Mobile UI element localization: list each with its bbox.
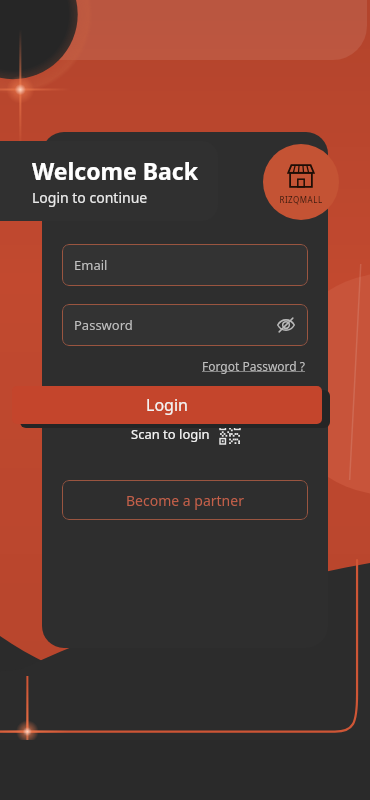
staticText: Become a partner bbox=[126, 491, 244, 510]
staticText: Login to continue bbox=[32, 188, 148, 207]
button[interactable]: Forgot Password ? bbox=[200, 356, 308, 376]
staticText: Login bbox=[146, 394, 188, 416]
button[interactable]: Password bbox=[62, 304, 308, 346]
staticText: RIZQMALL bbox=[279, 194, 323, 205]
button[interactable]: Become a partner bbox=[62, 480, 308, 520]
button[interactable]: Email bbox=[62, 244, 308, 286]
button[interactable]: Scan to login bbox=[125, 420, 246, 448]
staticText: Forgot Password ? bbox=[202, 358, 306, 374]
button[interactable]: Show password bbox=[274, 313, 298, 337]
button[interactable]: Welcome Back bbox=[0, 141, 218, 221]
staticText: Password bbox=[74, 316, 133, 334]
staticText: Email bbox=[74, 256, 108, 274]
button[interactable]: Login bbox=[12, 386, 322, 424]
staticText: Welcome Back bbox=[32, 155, 198, 186]
button[interactable]: RizqMall logo bbox=[263, 144, 339, 220]
staticText: Scan to login bbox=[131, 425, 210, 443]
